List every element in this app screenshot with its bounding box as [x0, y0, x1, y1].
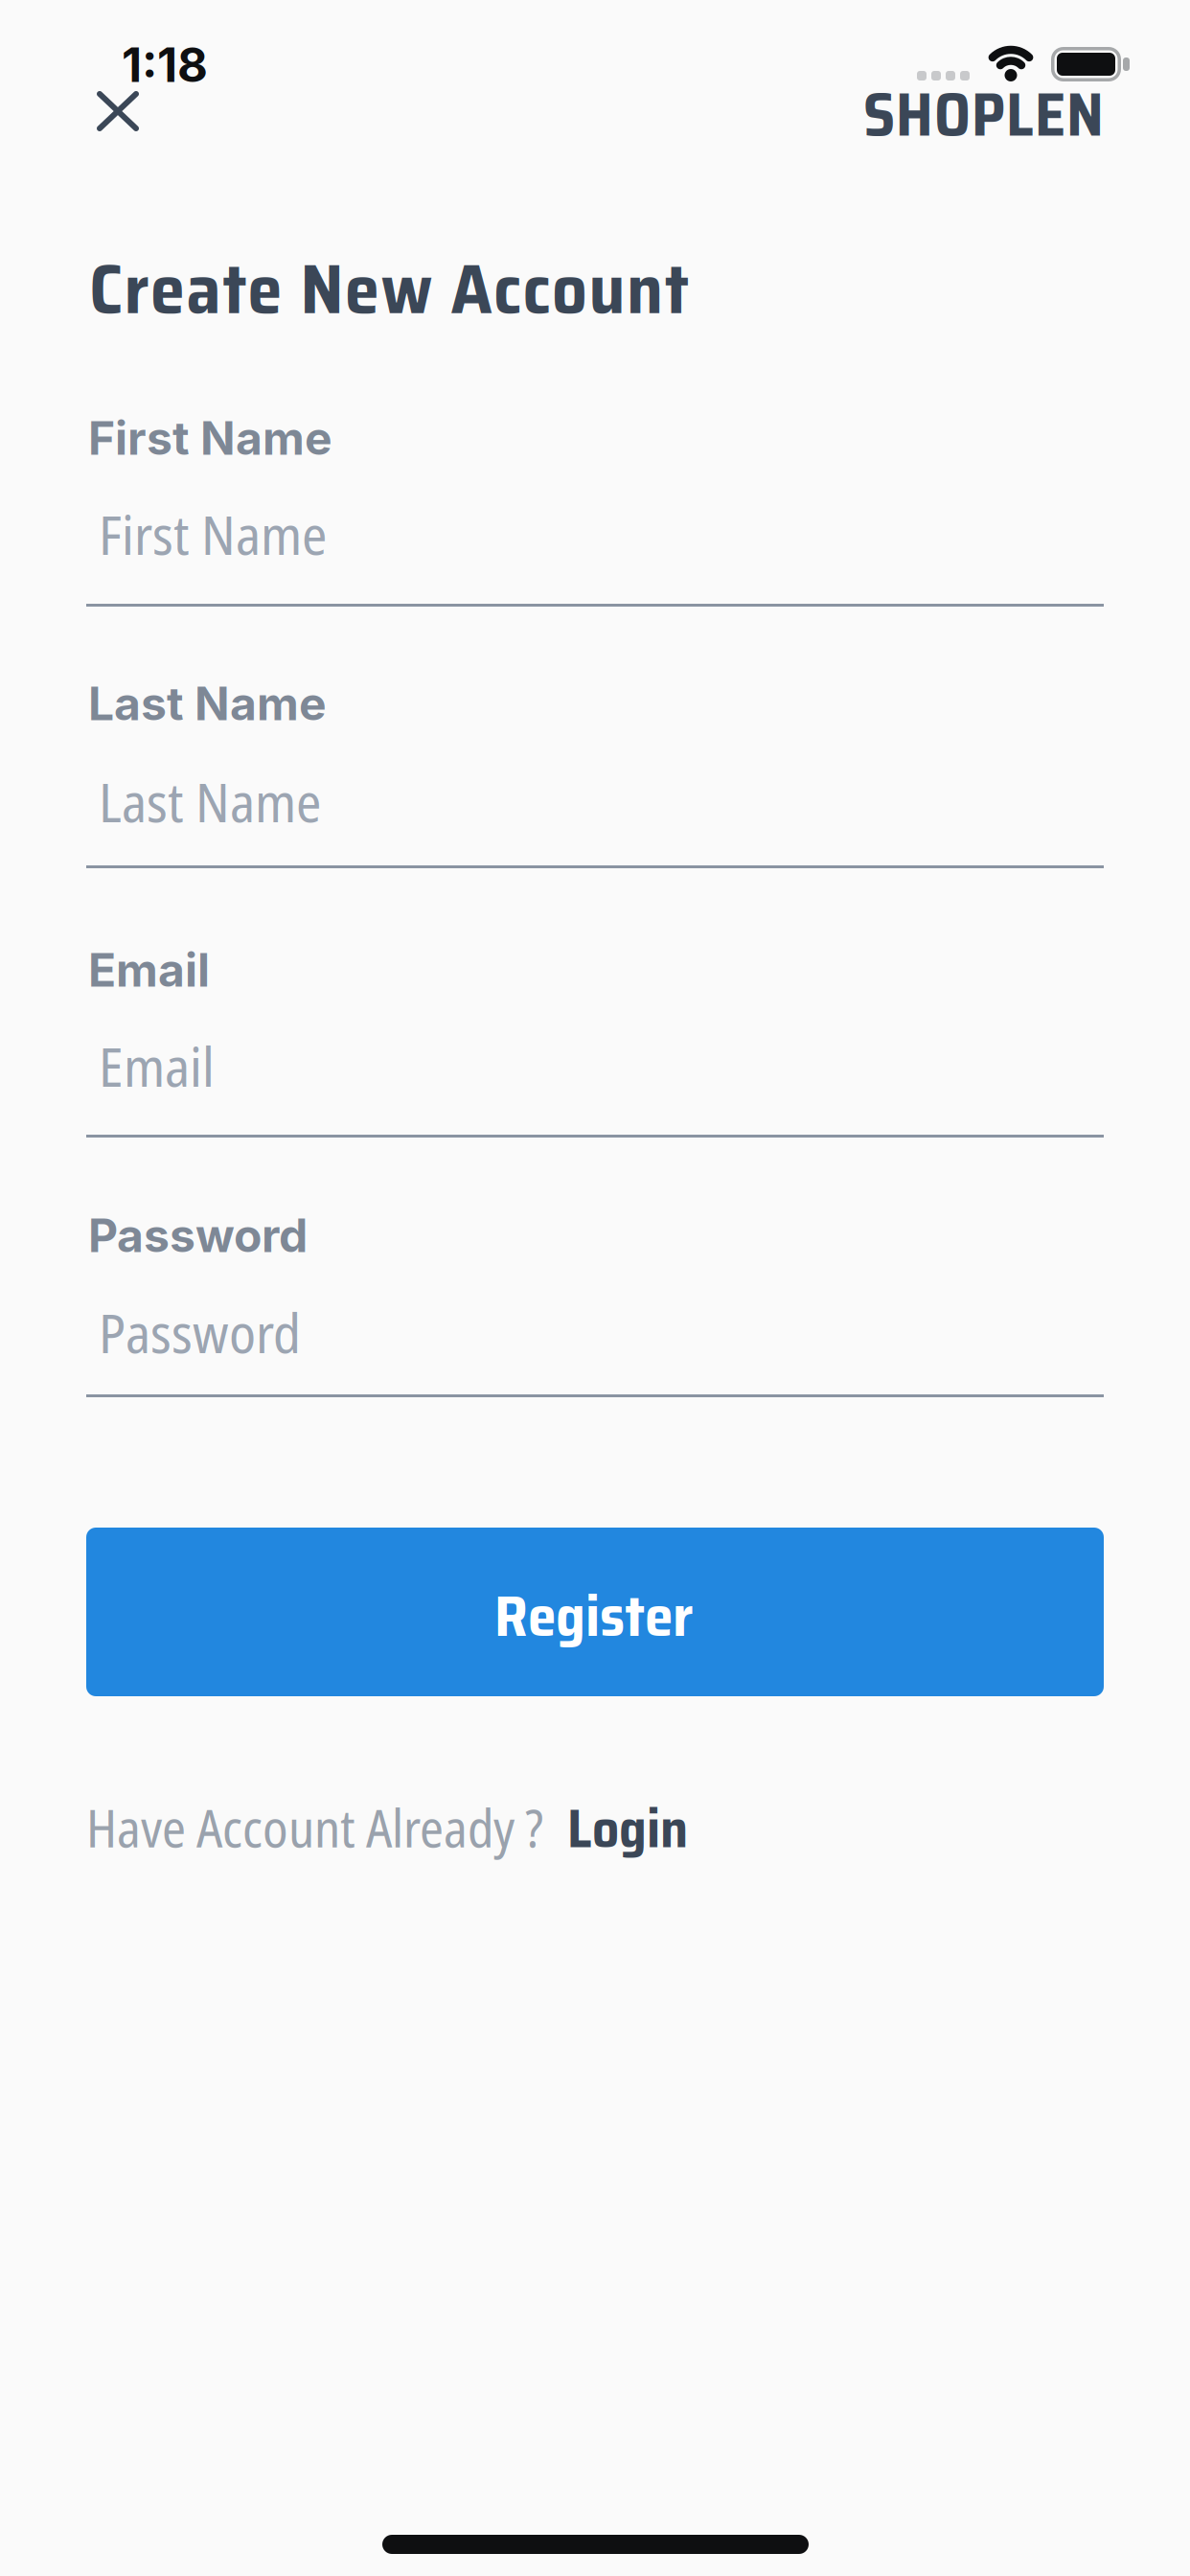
button[interactable]: Close [90, 84, 146, 138]
staticText: Email [99, 1028, 215, 1103]
button[interactable]: First Name [86, 479, 1104, 607]
staticText: Last Name [88, 676, 327, 731]
staticText: First Name [99, 496, 327, 571]
button[interactable]: Last Name [86, 741, 1104, 868]
staticText: Login [567, 1786, 688, 1871]
button[interactable]: Login [567, 1786, 688, 1871]
staticText: Email [88, 942, 210, 998]
staticText: SHOPLEN [863, 67, 1104, 162]
staticText: Have Account Already ? [86, 1792, 543, 1863]
staticText: First Name [88, 410, 332, 466]
button[interactable]: Register [86, 1528, 1104, 1696]
staticText: Last Name [99, 764, 321, 838]
staticText: 1:18 [122, 36, 208, 93]
staticText: Create New Account [89, 234, 689, 344]
button[interactable]: Password [86, 1270, 1104, 1397]
staticText: Password [99, 1295, 301, 1369]
button[interactable]: Email [86, 1010, 1104, 1138]
staticText: Password [88, 1207, 308, 1263]
staticText: Register [494, 1571, 694, 1661]
